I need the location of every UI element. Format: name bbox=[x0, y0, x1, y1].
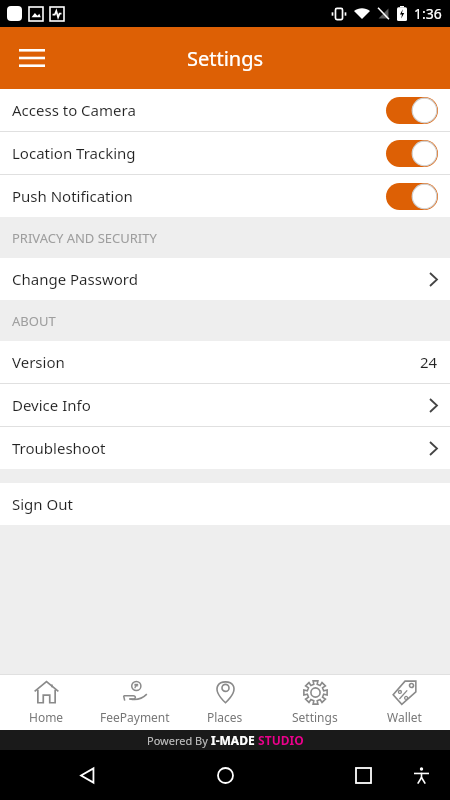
staticText: ABOUT bbox=[12, 312, 56, 330]
staticText: Settings bbox=[187, 45, 264, 72]
staticText: I-MADE bbox=[211, 732, 255, 748]
button[interactable]: Accessibility bbox=[406, 760, 436, 790]
button[interactable]: Troubleshoot bbox=[0, 427, 450, 469]
button[interactable]: Sign Out bbox=[0, 483, 450, 525]
button[interactable]: Open navigation menu bbox=[10, 36, 54, 80]
button[interactable]: Access to Camera bbox=[0, 89, 450, 131]
staticText: Wallet bbox=[387, 709, 422, 725]
staticText: Version bbox=[12, 352, 420, 372]
button[interactable]: Version bbox=[0, 341, 450, 383]
button[interactable]: Wallet bbox=[360, 674, 448, 730]
button[interactable]: Change Password bbox=[0, 258, 450, 300]
button[interactable]: Recent apps bbox=[346, 758, 380, 792]
staticText: Change Password bbox=[12, 269, 429, 289]
staticText: Device Info bbox=[12, 395, 429, 415]
staticText: Home bbox=[29, 709, 64, 725]
staticText: FeePayment bbox=[100, 709, 170, 725]
staticText: STUDIO bbox=[255, 732, 304, 748]
staticText: Powered By bbox=[147, 733, 211, 748]
button[interactable]: Home bbox=[208, 758, 242, 792]
staticText: Location Tracking bbox=[12, 143, 386, 163]
staticText: 24 bbox=[420, 352, 438, 372]
button[interactable]: Push Notification bbox=[0, 175, 450, 217]
button[interactable]: Settings bbox=[271, 674, 359, 730]
staticText: Sign Out bbox=[12, 494, 438, 514]
staticText: Push Notification bbox=[12, 186, 386, 206]
button[interactable]: FeePayment bbox=[91, 674, 179, 730]
button[interactable]: Home bbox=[2, 674, 90, 730]
staticText: Places bbox=[207, 709, 243, 725]
staticText: 1:36 bbox=[414, 4, 442, 23]
button[interactable]: Back bbox=[70, 758, 104, 792]
button[interactable]: Location Tracking bbox=[0, 132, 450, 174]
staticText: Troubleshoot bbox=[12, 438, 429, 458]
staticText: PRIVACY AND SECURITY bbox=[12, 229, 157, 247]
staticText: Settings bbox=[292, 709, 338, 725]
staticText: Access to Camera bbox=[12, 100, 386, 120]
button[interactable]: Device Info bbox=[0, 384, 450, 426]
button[interactable]: Places bbox=[181, 674, 269, 730]
